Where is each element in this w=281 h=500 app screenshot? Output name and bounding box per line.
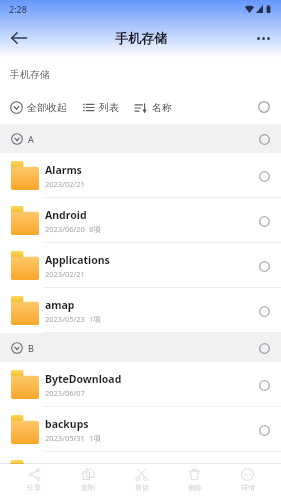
staticText: 手机存储 (115, 30, 167, 46)
button[interactable]: 手机存储 (10, 68, 50, 81)
staticText: 剪切 (135, 483, 149, 492)
button[interactable]: ByteDownload (0, 362, 281, 407)
button[interactable]: A (0, 124, 281, 153)
button[interactable]: Select section (253, 128, 275, 150)
staticText: Browser (45, 462, 89, 476)
staticText: Alarms (45, 163, 82, 177)
staticText: 2023/06/07 (45, 388, 85, 398)
staticText: 复制 (81, 483, 95, 492)
button[interactable]: Back (3, 22, 35, 54)
button[interactable]: 列表 (83, 101, 119, 114)
staticText: 2023/05/12 (45, 478, 85, 488)
button[interactable]: 删除 (168, 464, 221, 496)
staticText: 2023/05/23 (45, 314, 85, 324)
button[interactable]: Select Alarms (253, 165, 275, 187)
staticText: 1项 (89, 433, 101, 443)
staticText: A (28, 133, 34, 145)
staticText: Android (45, 208, 87, 222)
staticText: Applications (45, 253, 110, 267)
button[interactable]: 分享 (7, 464, 61, 496)
staticText: amap (45, 298, 75, 312)
button[interactable]: 详情 (221, 464, 274, 496)
staticText: 2023/02/21 (45, 179, 85, 189)
staticText: 列表 (99, 101, 119, 114)
staticText: 分享 (27, 483, 41, 492)
button[interactable]: 复制 (61, 464, 115, 496)
staticText: 1项 (89, 314, 101, 324)
staticText: 详情 (241, 483, 255, 492)
button[interactable]: More options (247, 22, 279, 54)
button[interactable]: backups (0, 407, 281, 452)
button[interactable]: Select Applications (253, 255, 275, 277)
staticText: ByteDownload (45, 372, 122, 386)
button[interactable]: Browser (0, 452, 281, 497)
button[interactable]: Android (0, 198, 281, 243)
button[interactable]: 名称 (135, 101, 172, 114)
button[interactable]: Select all (253, 96, 275, 118)
staticText: B (28, 342, 34, 354)
staticText: backups (45, 417, 89, 431)
button[interactable]: Applications (0, 243, 281, 288)
button[interactable]: Select ByteDownload (253, 374, 275, 396)
staticText: 2023/02/21 (45, 269, 85, 279)
button[interactable]: amap (0, 288, 281, 333)
staticText: 删除 (188, 483, 202, 492)
staticText: 2023/05/31 (45, 433, 85, 443)
staticText: 全部收起 (27, 101, 67, 114)
button[interactable]: Alarms (0, 153, 281, 198)
staticText: 2023/06/20 (45, 224, 85, 234)
button[interactable]: Select Android (253, 210, 275, 232)
button[interactable]: Select backups (253, 419, 275, 441)
button[interactable]: Select amap (253, 300, 275, 322)
button[interactable]: B (0, 333, 281, 362)
button[interactable]: 剪切 (115, 464, 168, 496)
staticText: 名称 (152, 101, 172, 114)
staticText: 2:28 (9, 3, 27, 15)
button[interactable]: 全部收起 (10, 101, 67, 114)
staticText: 8项 (89, 224, 101, 234)
button[interactable]: Select section (253, 337, 275, 359)
